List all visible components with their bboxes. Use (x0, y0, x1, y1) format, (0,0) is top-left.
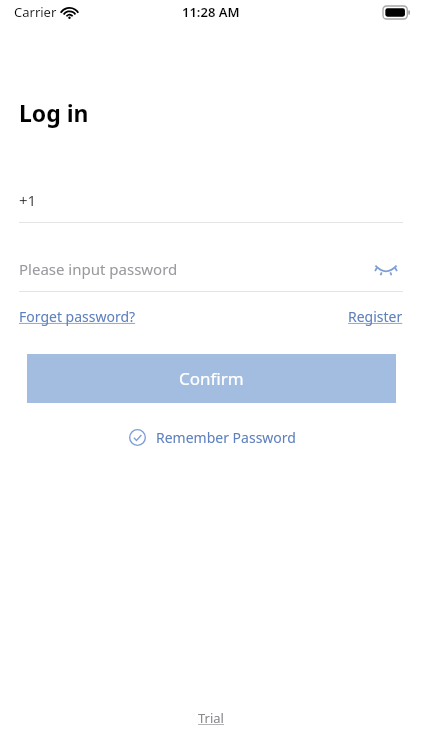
staticText: Remember Password (156, 428, 296, 447)
staticText: Forget password? (19, 307, 136, 326)
button[interactable]: Show password (369, 251, 403, 285)
staticText: Confirm (179, 367, 244, 390)
staticText: Log in (19, 97, 89, 128)
button[interactable]: Forget password? (19, 307, 136, 326)
button[interactable]: Register (348, 307, 403, 326)
button[interactable]: +1 (19, 180, 403, 223)
button[interactable]: Remember Password (126, 426, 296, 448)
staticText: +1 (19, 190, 37, 210)
button[interactable]: Trial (198, 709, 224, 727)
staticText: Carrier (14, 3, 57, 21)
staticText: Register (348, 307, 403, 326)
button[interactable]: Confirm (27, 354, 396, 403)
staticText: 11:28 AM (182, 3, 240, 21)
staticText: Please input password (19, 259, 178, 279)
staticText: Trial (198, 709, 224, 727)
button[interactable]: Please input password (19, 249, 403, 292)
